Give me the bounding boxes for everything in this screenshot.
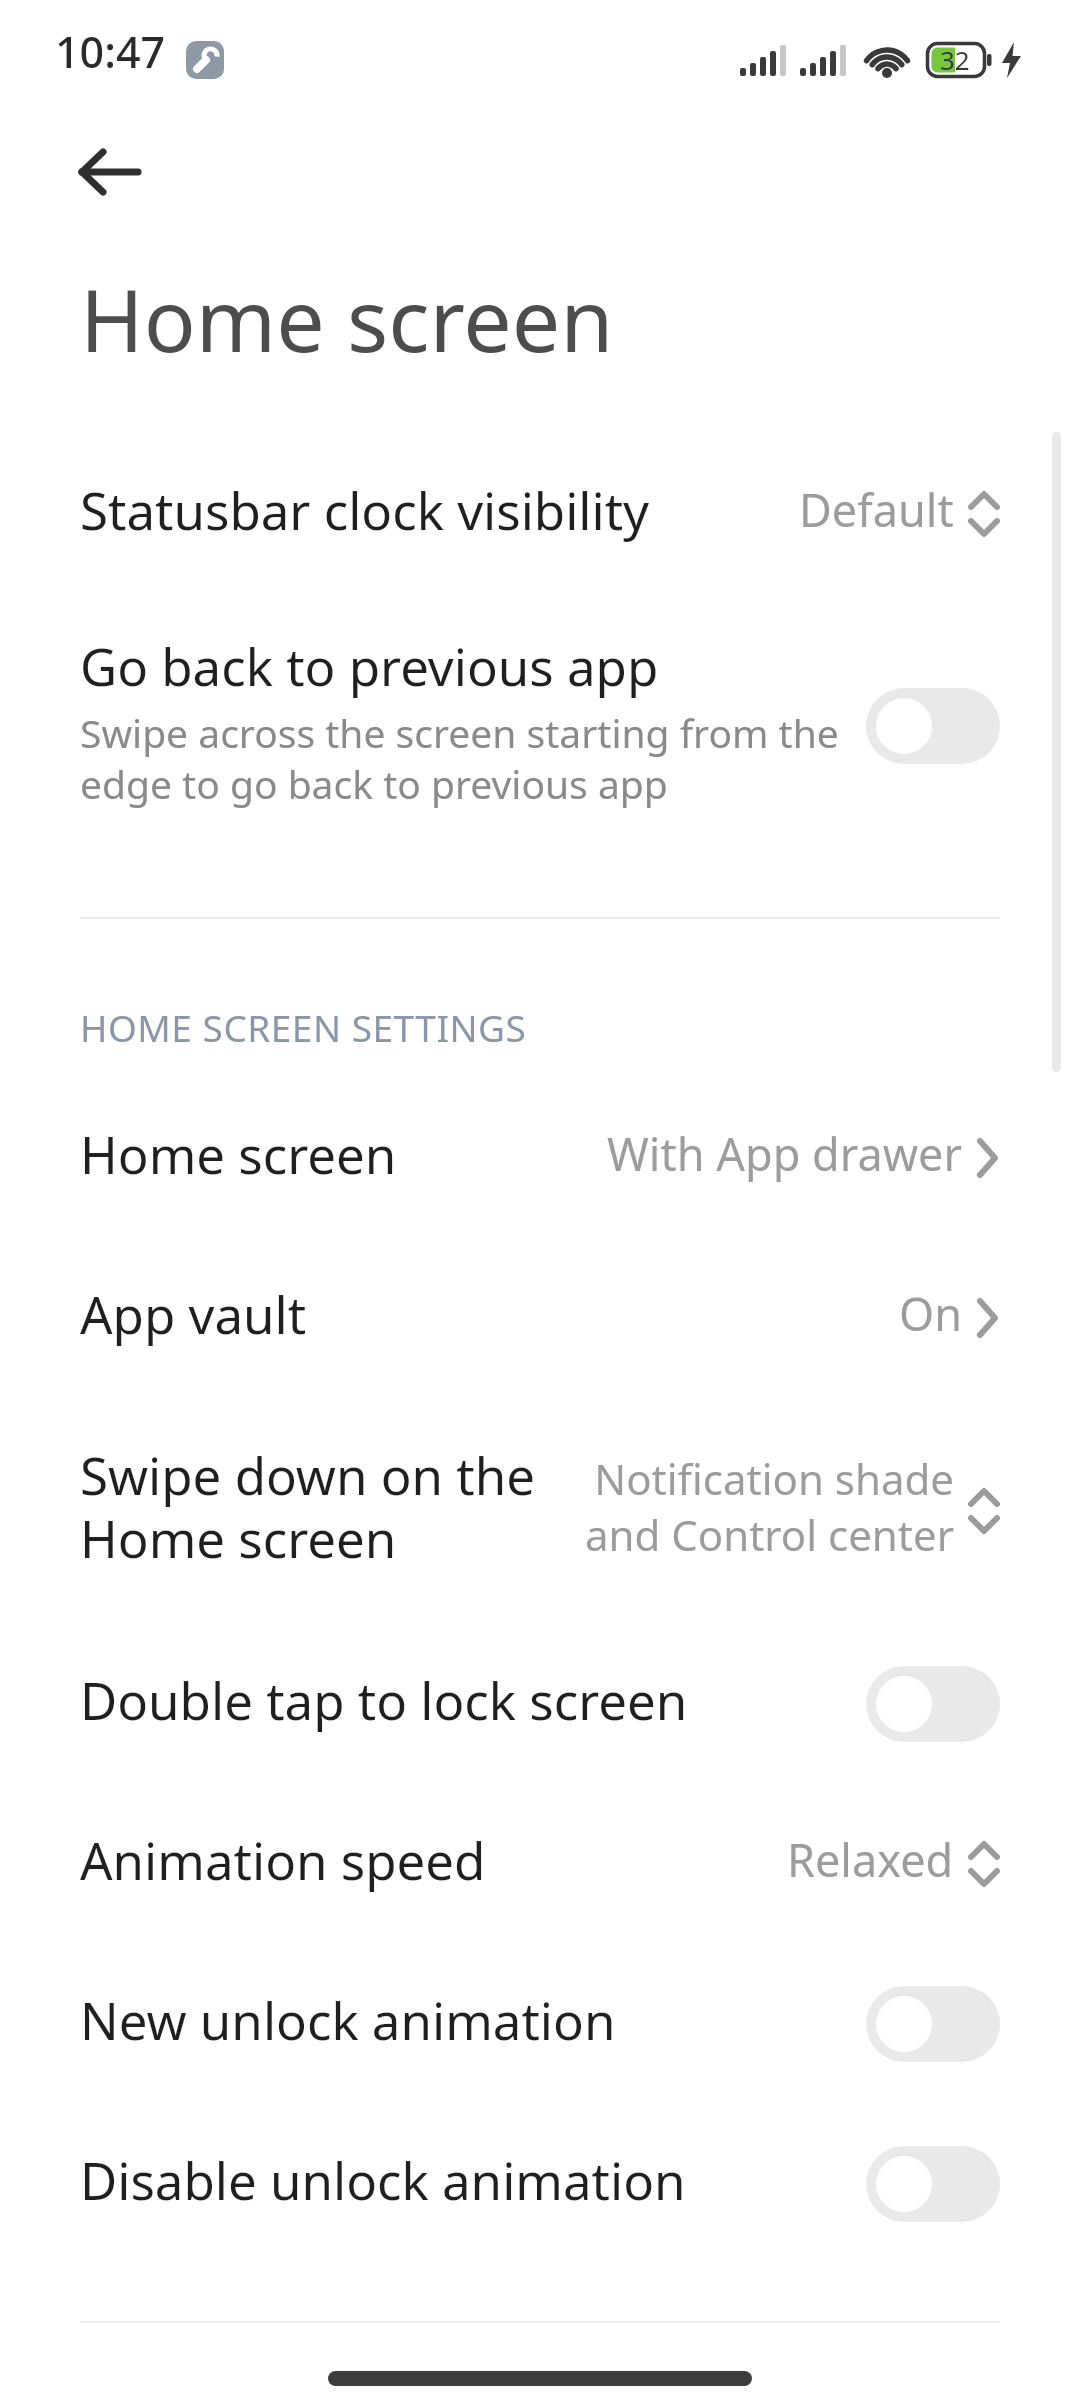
staticText: Default	[799, 479, 954, 540]
button[interactable]: Disable unlock animation	[0, 2104, 1080, 2264]
button[interactable]	[866, 1986, 1000, 2062]
staticText: Disable unlock animation	[80, 2145, 686, 2214]
staticText: App vault	[80, 1279, 307, 1348]
button[interactable]: App vault	[0, 1238, 1080, 1398]
button[interactable]: Home screen	[0, 1078, 1080, 1238]
staticText: With App drawer	[607, 1123, 962, 1184]
button[interactable]	[866, 2146, 1000, 2222]
staticText: On	[899, 1283, 962, 1344]
button[interactable]: Double tap to lock screen	[0, 1624, 1080, 1784]
staticText: Home screen	[80, 260, 614, 377]
button[interactable]	[866, 1666, 1000, 1742]
staticText: New unlock animation	[80, 1985, 616, 2054]
staticText: Swipe across the screen starting from th…	[80, 706, 839, 810]
button[interactable]: New unlock animation	[0, 1944, 1080, 2104]
button[interactable]: Statusbar clock visibility	[0, 434, 1080, 594]
staticText: Notification shade and Control center	[584, 1450, 954, 1563]
staticText: Go back to previous app	[80, 631, 659, 700]
button[interactable]: Animation speed	[0, 1784, 1080, 1944]
staticText: Statusbar clock visibility	[80, 475, 650, 544]
staticText: Relaxed	[787, 1829, 954, 1890]
staticText: Home screen	[80, 1119, 397, 1188]
staticText: 10:47	[55, 22, 166, 81]
staticText: Animation speed	[80, 1825, 486, 1894]
staticText: Double tap to lock screen	[80, 1665, 688, 1734]
staticText: Swipe down on the Home screen	[80, 1440, 536, 1573]
button[interactable]	[866, 688, 1000, 764]
staticText: 32	[940, 42, 970, 77]
button[interactable]: Swipe down on the Home screen	[0, 1398, 1080, 1624]
button[interactable]: Go back to previous app	[0, 594, 1080, 866]
button[interactable]	[78, 148, 142, 196]
staticText: HOME SCREEN SETTINGS	[80, 1002, 527, 1052]
